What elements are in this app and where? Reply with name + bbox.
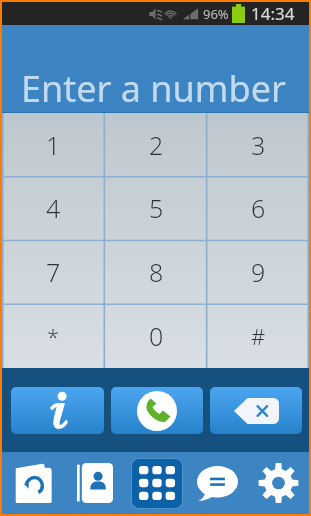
button[interactable]: 4 <box>2 176 105 240</box>
staticText: 2 <box>149 128 164 162</box>
staticText: 4 <box>46 191 61 225</box>
button[interactable]: 5 <box>105 176 207 240</box>
button[interactable]: 7 <box>2 240 105 304</box>
staticText: 9 <box>251 255 266 289</box>
button[interactable]: * <box>2 304 105 368</box>
button[interactable]: Keypad <box>126 452 187 514</box>
button[interactable]: Contacts <box>64 452 126 514</box>
staticText: 0 <box>149 319 164 353</box>
button[interactable]: 9 <box>207 240 309 304</box>
staticText: 7 <box>46 255 61 289</box>
staticText: 3 <box>251 128 266 162</box>
button[interactable]: 3 <box>207 113 309 176</box>
staticText: # <box>251 321 266 351</box>
staticText: 14:34 <box>251 2 295 25</box>
button[interactable]: 6 <box>207 176 309 240</box>
button[interactable]: Messages <box>187 452 248 514</box>
button[interactable]: Delete <box>210 387 302 434</box>
button[interactable]: Call <box>111 387 203 434</box>
staticText: 8 <box>149 255 164 289</box>
button[interactable]: 2 <box>105 113 207 176</box>
button[interactable]: 0 <box>105 304 207 368</box>
staticText: 5 <box>149 191 164 225</box>
staticText: 96% <box>203 5 229 23</box>
staticText: 6 <box>251 191 266 225</box>
button[interactable]: 8 <box>105 240 207 304</box>
button[interactable]: 1 <box>2 113 105 176</box>
button[interactable]: Settings <box>248 452 309 514</box>
staticText: Enter a number <box>21 64 286 113</box>
staticText: 1 <box>46 128 61 162</box>
button[interactable]: Recent calls <box>2 452 64 514</box>
button[interactable]: # <box>207 304 309 368</box>
staticText: * <box>47 321 60 351</box>
button[interactable]: Info <box>11 387 104 434</box>
